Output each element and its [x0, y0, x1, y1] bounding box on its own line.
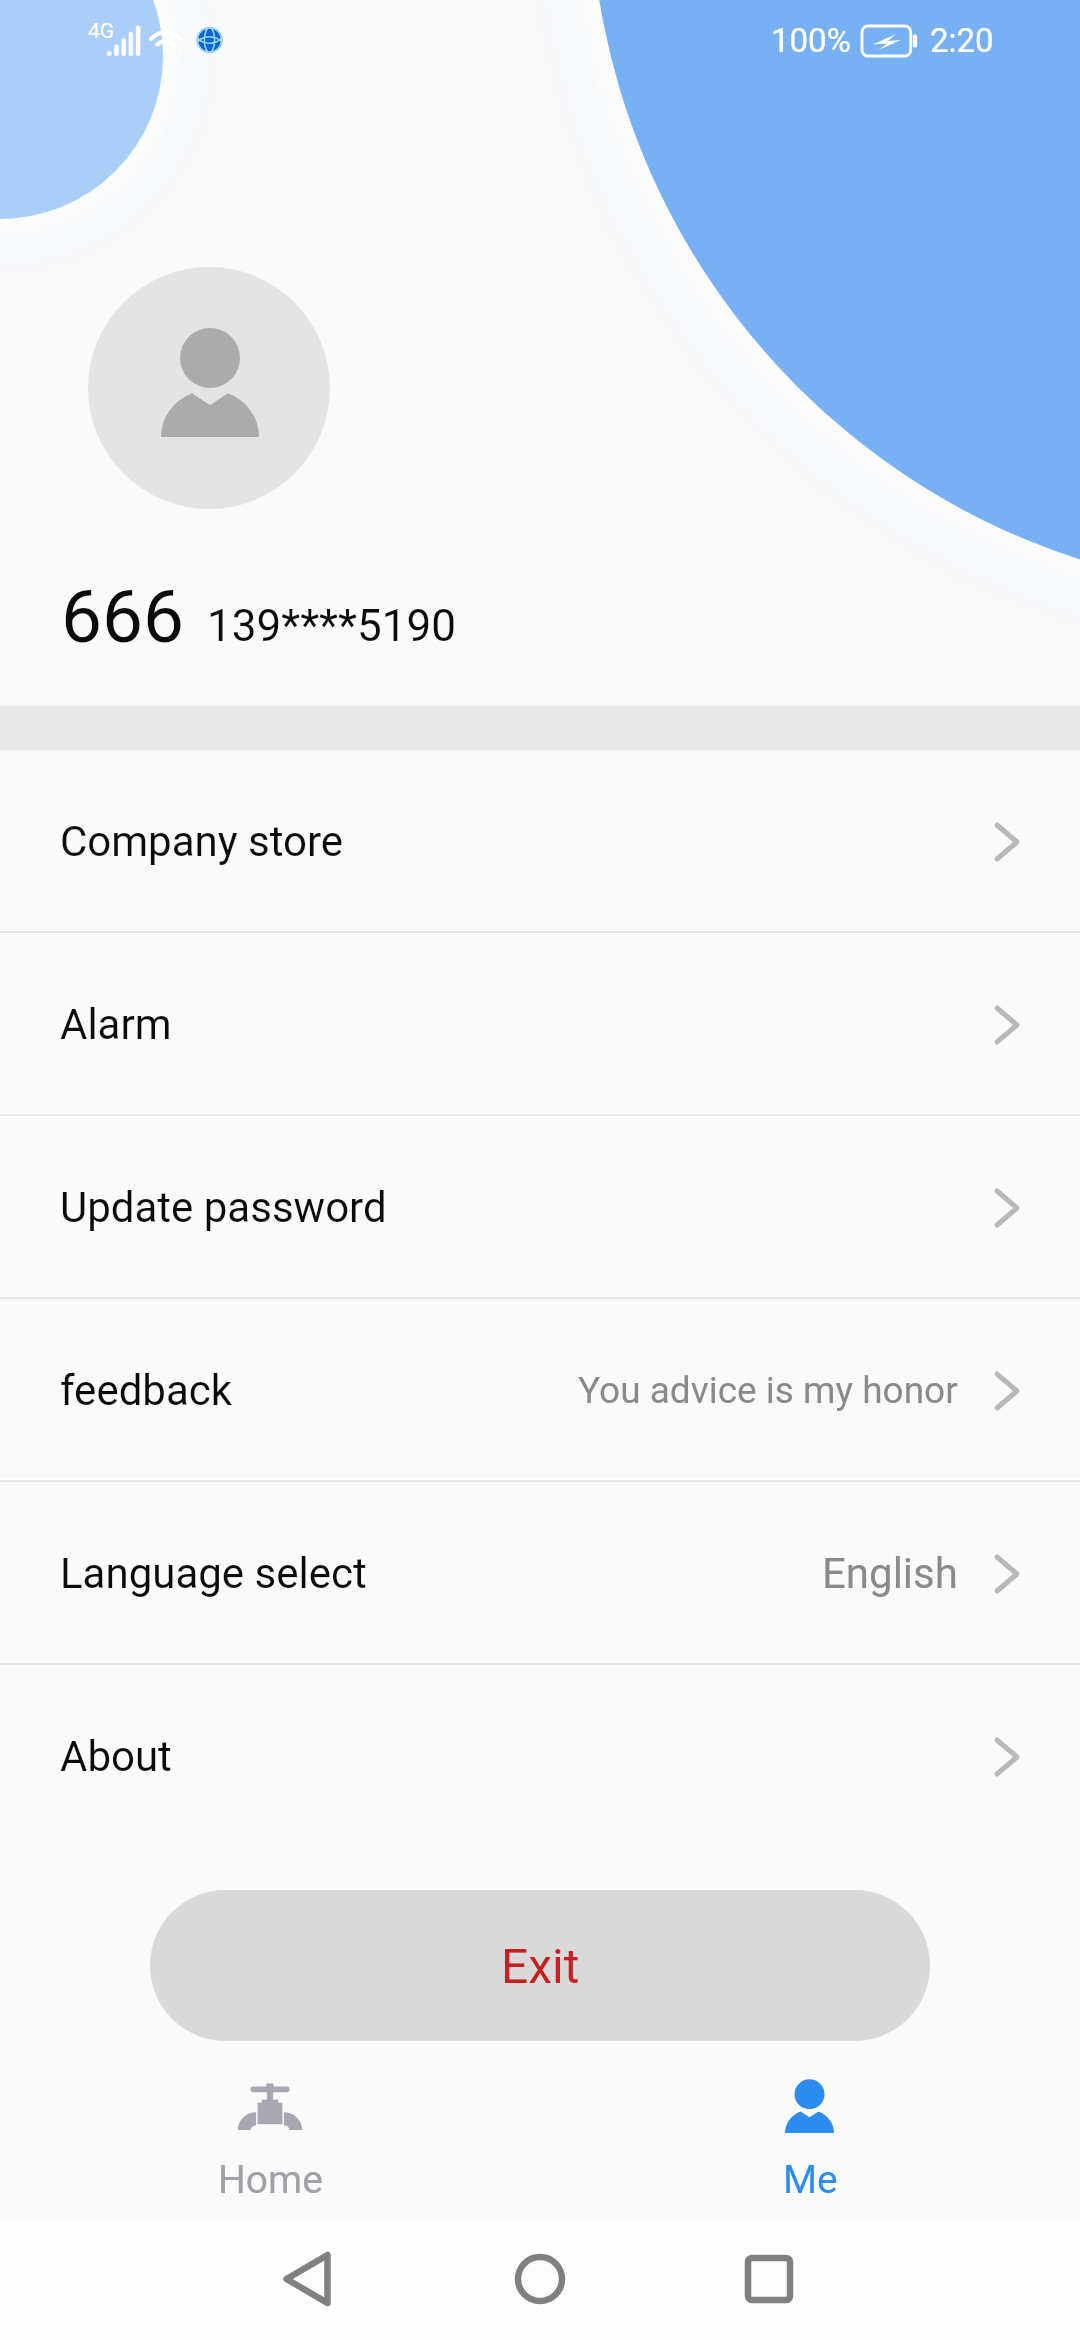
- staticText: feedback: [60, 1366, 233, 1415]
- staticText: Company store: [60, 817, 344, 866]
- staticText: About: [60, 1732, 172, 1781]
- staticText: 4G: [88, 19, 115, 44]
- button[interactable]: Back: [237, 2218, 377, 2340]
- staticText: English: [822, 1549, 958, 1598]
- button[interactable]: Me: [540, 2060, 1080, 2218]
- button[interactable]: Recent apps: [699, 2218, 839, 2340]
- button[interactable]: Update password: [0, 1116, 1080, 1299]
- button[interactable]: feedback: [0, 1299, 1080, 1482]
- button[interactable]: Exit: [150, 1890, 930, 2041]
- button[interactable]: Home: [470, 2218, 610, 2340]
- staticText: Update password: [60, 1183, 387, 1232]
- button[interactable]: Company store: [0, 750, 1080, 933]
- button[interactable]: Alarm: [0, 933, 1080, 1116]
- button[interactable]: Language select: [0, 1482, 1080, 1665]
- button[interactable]: Profile photo: [88, 267, 330, 509]
- staticText: Me: [783, 2157, 838, 2203]
- staticText: Exit: [501, 1938, 580, 1994]
- staticText: Alarm: [60, 1000, 172, 1049]
- staticText: 139****5190: [207, 600, 456, 652]
- button[interactable]: About: [0, 1665, 1080, 1848]
- staticText: 2:20: [930, 21, 994, 60]
- staticText: You advice is my honor: [578, 1369, 958, 1412]
- staticText: Home: [218, 2157, 323, 2203]
- staticText: 100%: [771, 21, 851, 60]
- staticText: 666: [61, 574, 185, 660]
- button[interactable]: Home: [0, 2060, 540, 2218]
- staticText: Language select: [60, 1549, 367, 1598]
